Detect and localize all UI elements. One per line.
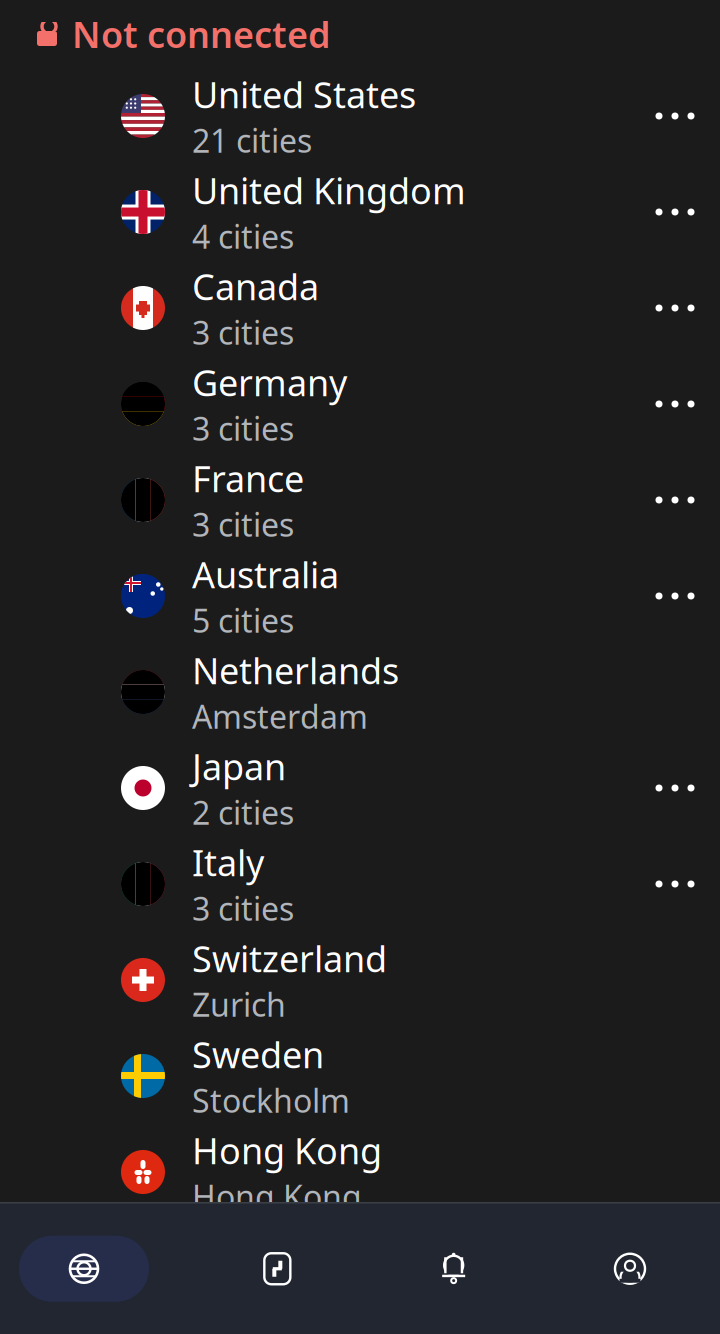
staticText: Netherlands (192, 646, 399, 694)
button[interactable]: Switzerland (0, 932, 630, 1028)
button[interactable]: More options for United States (630, 68, 720, 164)
staticText: Canada (192, 262, 319, 310)
button[interactable]: Hong Kong (0, 1124, 630, 1220)
staticText: 5 cities (192, 599, 294, 642)
button[interactable]: Locations (19, 1236, 149, 1302)
staticText: 4 cities (192, 215, 294, 258)
button[interactable]: More options for Canada (630, 260, 720, 356)
staticText: 3 cities (192, 407, 294, 450)
staticText: United Kingdom (192, 166, 466, 214)
button[interactable]: Australia (0, 548, 630, 644)
staticText: Japan (192, 742, 286, 790)
staticText: Not connected (72, 10, 331, 58)
staticText: 2 cities (192, 791, 294, 834)
button[interactable]: More options for France (630, 452, 720, 548)
staticText: 21 cities (192, 119, 312, 162)
staticText: 3 cities (192, 503, 294, 546)
button[interactable]: United States (0, 68, 630, 164)
staticText: Sweden (192, 1030, 324, 1078)
staticText: Zurich (192, 983, 286, 1026)
button[interactable]: France (0, 452, 630, 548)
staticText: Stockholm (192, 1079, 350, 1122)
staticText: Switzerland (192, 934, 387, 982)
staticText: Italy (192, 838, 264, 886)
button[interactable]: More options for Japan (630, 740, 720, 836)
staticText: 3 cities (192, 887, 294, 930)
button[interactable]: Notifications (406, 1236, 502, 1302)
staticText: United States (192, 70, 416, 118)
staticText: Hong Kong (192, 1175, 362, 1218)
staticText: Amsterdam (192, 695, 368, 738)
button[interactable]: United Kingdom (0, 164, 630, 260)
button[interactable]: Protection (229, 1236, 325, 1302)
staticText: France (192, 454, 304, 502)
staticText: Australia (192, 550, 339, 598)
button[interactable]: More options for Italy (630, 836, 720, 932)
button[interactable]: Account (582, 1236, 678, 1302)
button[interactable]: Italy (0, 836, 630, 932)
button[interactable]: Germany (0, 356, 630, 452)
button[interactable]: More options for Germany (630, 356, 720, 452)
button[interactable]: More options for United Kingdom (630, 164, 720, 260)
button[interactable]: Sweden (0, 1028, 630, 1124)
button[interactable]: More options for Australia (630, 548, 720, 644)
staticText: 3 cities (192, 311, 294, 354)
staticText: Hong Kong (192, 1126, 382, 1174)
button[interactable]: Netherlands (0, 644, 630, 740)
button[interactable]: Japan (0, 740, 630, 836)
button[interactable]: Canada (0, 260, 630, 356)
staticText: Germany (192, 358, 347, 406)
